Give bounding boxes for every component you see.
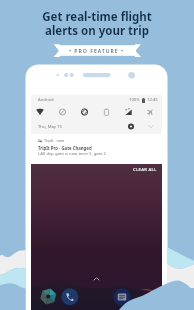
staticText: 12:45 [147, 97, 158, 103]
staticText: Android [38, 97, 54, 103]
staticText: • PRO FEATURE • [69, 47, 125, 54]
staticText: TripIt · now [44, 138, 65, 143]
staticText: TripIt Pro · Gate Changed [38, 145, 92, 151]
staticText: CLEAR ALL [133, 167, 157, 173]
staticText: Get real-time flight alerts on your trip [42, 9, 152, 39]
staticText: 100% [129, 97, 140, 103]
staticText: LAX dep gate is now term 3, gate 2 [38, 151, 106, 157]
staticText: Thu, May 15 [38, 124, 62, 130]
button[interactable]: CLEAR ALL [131, 165, 159, 175]
